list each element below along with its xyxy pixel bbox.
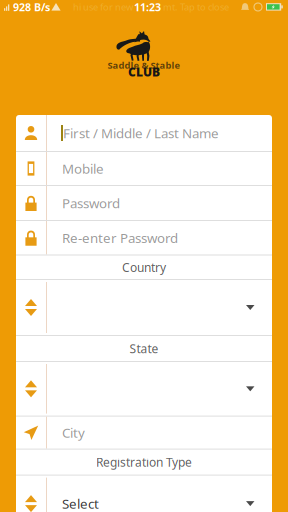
- button[interactable]: Mobile: [16, 152, 272, 185]
- button[interactable]: [16, 362, 272, 416]
- button[interactable]: [16, 280, 272, 335]
- button[interactable]: Re-enter Password: [16, 221, 272, 254]
- staticText: Password: [62, 194, 120, 212]
- button[interactable]: First / Middle / Last Name: [16, 115, 272, 151]
- staticText: State: [129, 340, 158, 356]
- staticText: Re-enter Password: [62, 229, 178, 247]
- staticText: Saddle & Stable: [107, 59, 180, 71]
- button[interactable]: Password: [16, 186, 272, 220]
- staticText: Registration Type: [96, 454, 192, 470]
- staticText: Select: [62, 495, 99, 512]
- staticText: Country: [122, 259, 166, 275]
- staticText: Mobile: [62, 160, 104, 177]
- staticText: hi use for new: [73, 1, 133, 13]
- staticText: 11:23: [134, 0, 161, 14]
- staticText: 928 B/s: [13, 0, 50, 14]
- staticText: CLUB: [128, 64, 160, 80]
- staticText: City: [62, 424, 85, 441]
- button[interactable]: Select: [16, 476, 272, 512]
- staticText: First / Middle / Last Name: [63, 124, 219, 142]
- staticText: mt. Tap to close: [163, 1, 229, 13]
- button[interactable]: City: [16, 417, 272, 449]
